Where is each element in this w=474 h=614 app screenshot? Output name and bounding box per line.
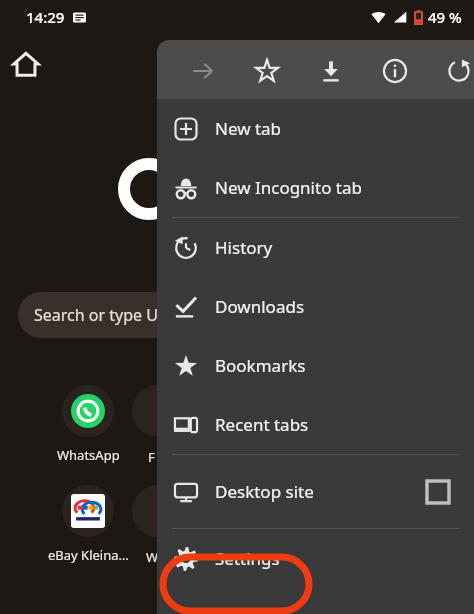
staticText: Settings: [215, 547, 280, 570]
button[interactable]: History: [157, 218, 474, 277]
staticText: WhatsApp: [57, 446, 120, 464]
button[interactable]: Forward: [186, 54, 220, 88]
button[interactable]: WhatsApp: [40, 385, 136, 464]
staticText: 49 %: [428, 7, 462, 27]
button[interactable]: Settings: [157, 529, 474, 588]
staticText: Desktop site: [215, 480, 426, 503]
staticText: Downloads: [215, 295, 305, 318]
staticText: W: [146, 548, 159, 566]
button[interactable]: Download page: [314, 54, 348, 88]
button[interactable]: New Incognito tab: [157, 158, 474, 217]
button[interactable]: Reload: [442, 54, 474, 88]
button[interactable]: Bookmarks: [157, 336, 474, 395]
staticText: History: [215, 236, 273, 259]
staticText: Search or type URL: [34, 304, 177, 326]
staticText: 14:29: [26, 7, 65, 27]
staticText: Recent tabs: [215, 413, 309, 436]
button[interactable]: Bookmark: [250, 54, 284, 88]
staticText: F: [148, 448, 155, 466]
staticText: New Incognito tab: [215, 176, 362, 199]
button[interactable]: Page info: [378, 54, 412, 88]
staticText: Bookmarks: [215, 354, 306, 377]
button[interactable]: Downloads: [157, 277, 474, 336]
button[interactable]: Desktop site: [157, 455, 474, 528]
button[interactable]: Search or type URL: [18, 292, 228, 338]
button[interactable]: eBay Kleina…: [40, 485, 136, 564]
staticText: eBay Kleina…: [48, 546, 129, 564]
button[interactable]: New tab: [157, 99, 474, 158]
staticText: New tab: [215, 117, 282, 140]
button[interactable]: Recent tabs: [157, 395, 474, 454]
